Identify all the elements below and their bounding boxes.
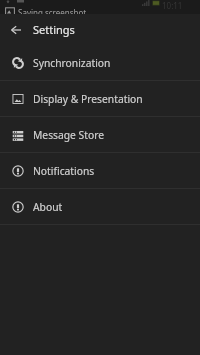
staticText: Saving screenshot... (18, 7, 93, 14)
staticText: Settings (33, 22, 75, 37)
button[interactable]: Message Store (0, 117, 200, 152)
staticText: 10:11 (162, 0, 183, 11)
button[interactable]: About (0, 189, 200, 224)
button[interactable]: Display & Presentation (0, 81, 200, 116)
button[interactable]: Synchronization (0, 45, 200, 80)
staticText: About (33, 200, 63, 214)
staticText: Display & Presentation (33, 92, 143, 106)
staticText: Synchronization (33, 56, 111, 70)
staticText: Message Store (33, 128, 105, 142)
button[interactable]: Notifications (0, 153, 200, 188)
button[interactable]: Navigate up (0, 14, 31, 45)
staticText: Notifications (33, 164, 95, 178)
